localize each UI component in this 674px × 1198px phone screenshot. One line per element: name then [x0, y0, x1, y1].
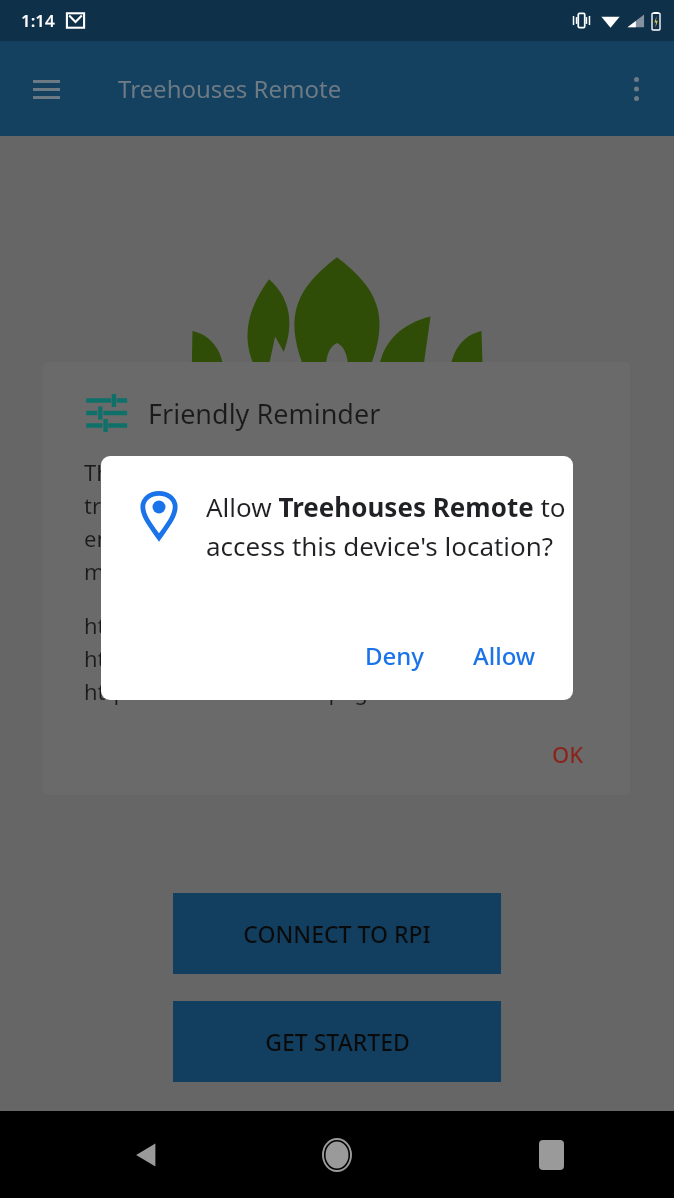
- staticText: Deny: [365, 639, 425, 672]
- staticText: OK: [552, 739, 584, 769]
- staticText: https://treehouses.io https://github.com…: [84, 610, 542, 706]
- button[interactable]: Allow: [461, 633, 548, 678]
- staticText: GET STARTED: [265, 1026, 410, 1057]
- button[interactable]: Home: [306, 1124, 368, 1186]
- staticText: Friendly Reminder: [148, 395, 381, 432]
- button[interactable]: GET STARTED: [173, 1001, 501, 1082]
- staticText: CONNECT TO RPI: [243, 918, 431, 949]
- button[interactable]: More options: [612, 65, 660, 113]
- button[interactable]: OK: [540, 731, 596, 777]
- button[interactable]: Deny: [353, 633, 437, 678]
- staticText: Allow: [473, 639, 536, 672]
- staticText: 1:14: [21, 9, 55, 32]
- button[interactable]: Recent apps: [520, 1124, 582, 1186]
- staticText: Allow Treehouses Remote to access this d…: [206, 489, 573, 563]
- button[interactable]: Open navigation menu: [22, 65, 70, 113]
- button[interactable]: CONNECT TO RPI: [173, 893, 501, 974]
- staticText: This app is a remote control for a treeh…: [84, 457, 503, 586]
- staticText: Treehouses Remote: [118, 72, 342, 105]
- button[interactable]: Back: [115, 1124, 177, 1186]
